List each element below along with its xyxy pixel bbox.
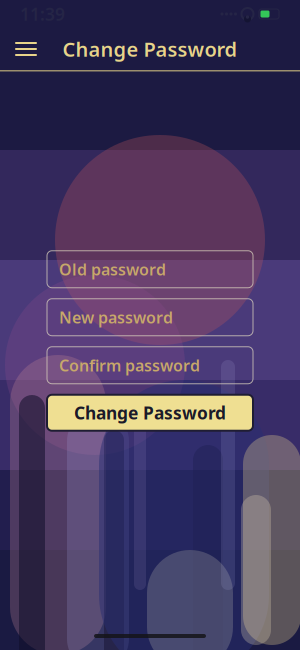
staticText: 11:39 <box>20 2 65 25</box>
button[interactable]: Confirm password <box>47 347 253 384</box>
button[interactable]: Change Password <box>47 395 253 431</box>
staticText: New password <box>59 307 173 328</box>
button[interactable]: New password <box>47 299 253 336</box>
staticText: Change Password <box>62 36 237 62</box>
staticText: Confirm password <box>59 355 200 376</box>
staticText: Change Password <box>74 401 226 424</box>
button[interactable]: Old password <box>47 251 253 288</box>
staticText: Old password <box>59 259 166 280</box>
button[interactable]: Menu <box>4 28 48 70</box>
